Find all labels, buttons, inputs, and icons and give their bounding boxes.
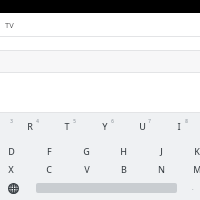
staticText: 7	[148, 118, 151, 124]
staticText: I	[177, 120, 181, 132]
button[interactable]: B	[115, 160, 133, 177]
button[interactable]: R	[21, 117, 39, 134]
staticText: 5	[73, 118, 76, 124]
button[interactable]: J	[152, 142, 170, 159]
staticText: C	[46, 163, 52, 175]
button[interactable]: C	[40, 160, 58, 177]
button[interactable]: Key	[0, 117, 13, 134]
button[interactable]: Change keyboard language	[4, 179, 22, 197]
staticText: 4	[36, 118, 39, 124]
staticText: T	[64, 120, 70, 132]
staticText: Y	[102, 120, 108, 132]
button[interactable]: D	[2, 142, 20, 159]
button[interactable]: F	[40, 142, 58, 159]
staticText: X	[8, 163, 14, 175]
button[interactable]: G	[77, 142, 95, 159]
staticText: D	[8, 145, 15, 157]
staticText: J	[160, 145, 163, 157]
staticText: U	[139, 120, 146, 132]
staticText: K	[194, 145, 200, 157]
button[interactable]: X	[2, 160, 20, 177]
button[interactable]: M	[188, 160, 200, 177]
button[interactable]: V	[78, 160, 96, 177]
button[interactable]: Y	[96, 117, 114, 134]
staticText: G	[83, 145, 90, 157]
staticText: B	[121, 163, 127, 175]
staticText: 3	[10, 118, 13, 124]
staticText: TV	[5, 20, 14, 30]
button[interactable]: K	[188, 142, 200, 159]
staticText: V	[84, 163, 90, 175]
button[interactable]: N	[152, 160, 170, 177]
staticText: 6	[111, 118, 114, 124]
staticText: 8	[185, 118, 188, 124]
button[interactable]: I	[170, 117, 188, 134]
button[interactable]: H	[114, 142, 132, 159]
staticText: F	[47, 145, 52, 157]
button[interactable]: T	[58, 117, 76, 134]
staticText: N	[158, 163, 165, 175]
button[interactable]: Period	[186, 181, 199, 194]
staticText: M	[193, 163, 200, 175]
staticText: H	[120, 145, 127, 157]
button[interactable]: TV	[0, 13, 200, 36]
button[interactable]: U	[133, 117, 151, 134]
staticText: .	[192, 184, 194, 192]
staticText: R	[27, 120, 33, 132]
